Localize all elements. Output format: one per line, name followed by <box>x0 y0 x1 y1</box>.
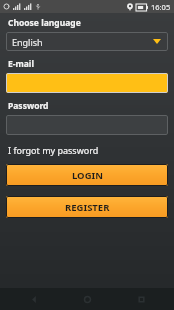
button[interactable]: LOGIN <box>6 164 168 186</box>
staticText: Choose language <box>8 17 81 29</box>
staticText: LOGIN <box>72 169 103 182</box>
staticText: I forgot my password <box>8 144 99 156</box>
staticText: Password <box>8 100 49 112</box>
button[interactable] <box>6 73 168 93</box>
button[interactable]: REGISTER <box>6 196 168 218</box>
staticText: REGISTER <box>65 201 110 214</box>
button[interactable]: I forgot my password <box>6 143 99 157</box>
staticText: English <box>12 36 43 48</box>
staticText: 16:05 <box>151 2 171 12</box>
button[interactable]: English <box>6 32 168 51</box>
button[interactable] <box>6 115 168 135</box>
staticText: E-mail <box>8 58 34 70</box>
